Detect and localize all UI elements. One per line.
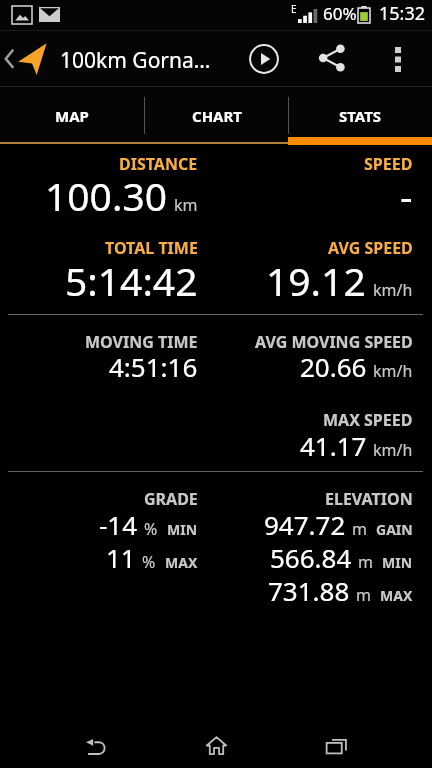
button[interactable]: STATS: [289, 87, 432, 145]
staticText: MIN: [382, 553, 413, 572]
staticText: GRADE: [144, 488, 198, 510]
button[interactable]: Share: [307, 34, 355, 82]
staticText: %: [144, 518, 158, 540]
staticText: GAIN: [376, 520, 413, 539]
button[interactable]: Recent apps: [302, 725, 370, 768]
button[interactable]: CHART: [145, 87, 288, 145]
staticText: -14: [99, 507, 138, 542]
staticText: 41.17: [300, 428, 367, 463]
staticText: m: [352, 518, 367, 540]
staticText: MAX: [380, 586, 413, 605]
staticText: %: [142, 551, 156, 573]
staticText: 19.12: [266, 254, 366, 307]
staticText: 60%: [323, 2, 357, 25]
staticText: 5:14:42: [65, 254, 198, 307]
staticText: MAX: [165, 553, 198, 572]
staticText: km/h: [373, 360, 413, 382]
staticText: E: [291, 2, 297, 16]
staticText: km/h: [373, 439, 413, 461]
staticText: 11: [106, 540, 136, 575]
staticText: -: [400, 169, 413, 222]
staticText: MIN: [167, 520, 198, 539]
staticText: AVG SPEED: [328, 237, 413, 259]
staticText: 731.88: [268, 573, 350, 608]
staticText: 947.72: [264, 507, 346, 542]
staticText: m: [356, 584, 371, 606]
staticText: km/h: [373, 279, 413, 301]
staticText: MAX SPEED: [323, 409, 413, 431]
staticText: 20.66: [300, 349, 367, 384]
staticText: 566.84: [270, 540, 352, 575]
staticText: MAP: [55, 106, 89, 126]
button[interactable]: Home: [182, 722, 250, 768]
button[interactable]: Play: [240, 35, 288, 83]
button[interactable]: Navigate up: [0, 31, 52, 87]
staticText: m: [358, 551, 373, 573]
button[interactable]: Back: [62, 726, 130, 768]
staticText: km: [174, 194, 198, 216]
button[interactable]: MAP: [0, 87, 144, 145]
staticText: CHART: [192, 106, 242, 126]
button[interactable]: More options: [376, 37, 420, 81]
staticText: 15:32: [379, 1, 426, 26]
staticText: 100km Gorna…: [60, 46, 211, 75]
staticText: 4:51:16: [109, 349, 198, 384]
staticText: 100.30: [45, 169, 167, 222]
staticText: AVG MOVING SPEED: [255, 331, 413, 353]
staticText: MOVING TIME: [85, 331, 198, 353]
staticText: SPEED: [364, 153, 413, 175]
staticText: TOTAL TIME: [105, 237, 198, 259]
staticText: ELEVATION: [325, 488, 413, 510]
staticText: STATS: [339, 106, 382, 126]
staticText: DISTANCE: [119, 153, 198, 175]
